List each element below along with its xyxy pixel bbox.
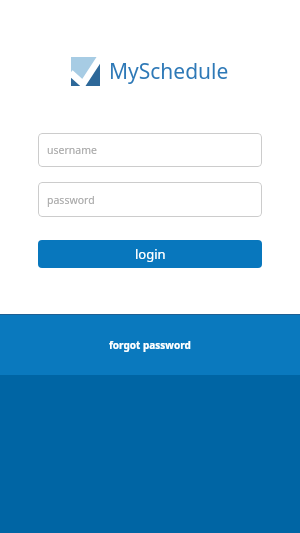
button[interactable]: password xyxy=(38,182,262,217)
button[interactable]: forgot password xyxy=(0,315,300,375)
staticText: MySchedule xyxy=(109,57,229,86)
button[interactable]: login xyxy=(38,240,262,268)
staticText: forgot password xyxy=(109,338,191,352)
staticText: password xyxy=(47,193,95,207)
staticText: username xyxy=(47,143,97,157)
staticText: login xyxy=(135,245,166,263)
button[interactable]: username xyxy=(38,133,262,167)
